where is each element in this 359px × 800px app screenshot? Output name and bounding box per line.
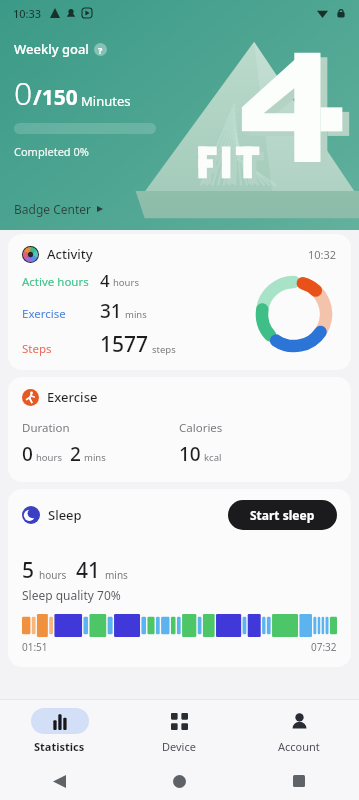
staticText: hours xyxy=(36,451,62,464)
staticText: Exercise xyxy=(22,306,66,322)
staticText: hours xyxy=(39,568,67,582)
button[interactable]: Activity xyxy=(8,234,351,370)
staticText: steps xyxy=(152,343,176,356)
staticText: Device xyxy=(162,739,196,754)
button[interactable]: Badge Center xyxy=(14,201,103,217)
staticText: kcal xyxy=(204,451,222,464)
staticText: Calories xyxy=(179,420,223,436)
staticText: 10:33 xyxy=(13,6,42,21)
staticText: mins xyxy=(125,308,147,321)
staticText: Start sleep xyxy=(250,507,315,523)
staticText: 0 xyxy=(14,71,33,115)
staticText: 0 xyxy=(22,441,33,467)
button[interactable]: Start sleep xyxy=(228,500,337,530)
staticText: Exercise xyxy=(47,388,98,406)
staticText: 1577 xyxy=(100,330,149,359)
staticText: Statistics xyxy=(34,739,85,754)
staticText: Minutes xyxy=(81,92,131,110)
staticText: 2 xyxy=(70,441,81,467)
staticText: Duration xyxy=(22,420,70,436)
staticText: Badge Center xyxy=(14,201,92,217)
staticText: mins xyxy=(105,568,128,582)
staticText: Weekly goal xyxy=(14,40,89,58)
button[interactable]: Account xyxy=(239,700,359,762)
staticText: Active hours xyxy=(22,274,89,290)
button[interactable]: Statistics xyxy=(0,700,119,762)
staticText: ? xyxy=(98,44,103,56)
staticText: Sleep xyxy=(48,506,82,524)
staticText: 4 xyxy=(100,269,110,292)
button[interactable]: Sleep xyxy=(8,489,351,667)
staticText: 10:32 xyxy=(308,247,337,262)
staticText: mins xyxy=(84,451,106,464)
staticText: 07:32 xyxy=(311,640,337,654)
staticText: 10 xyxy=(179,441,201,467)
button[interactable]: Exercise xyxy=(8,377,351,482)
button[interactable]: Help about weekly goal xyxy=(94,43,107,56)
staticText: Completed 0% xyxy=(14,144,89,159)
staticText: hours xyxy=(113,276,139,289)
staticText: Sleep quality 70% xyxy=(22,587,121,603)
staticText: 31 xyxy=(100,298,122,324)
staticText: 5 xyxy=(22,556,35,585)
staticText: Steps xyxy=(22,341,52,357)
staticText: Activity xyxy=(47,245,93,263)
staticText: 41 xyxy=(76,556,101,585)
staticText: Account xyxy=(278,739,320,754)
button[interactable]: Device xyxy=(119,700,239,762)
staticText: 01:51 xyxy=(22,640,48,654)
staticText: /150 xyxy=(33,83,78,112)
